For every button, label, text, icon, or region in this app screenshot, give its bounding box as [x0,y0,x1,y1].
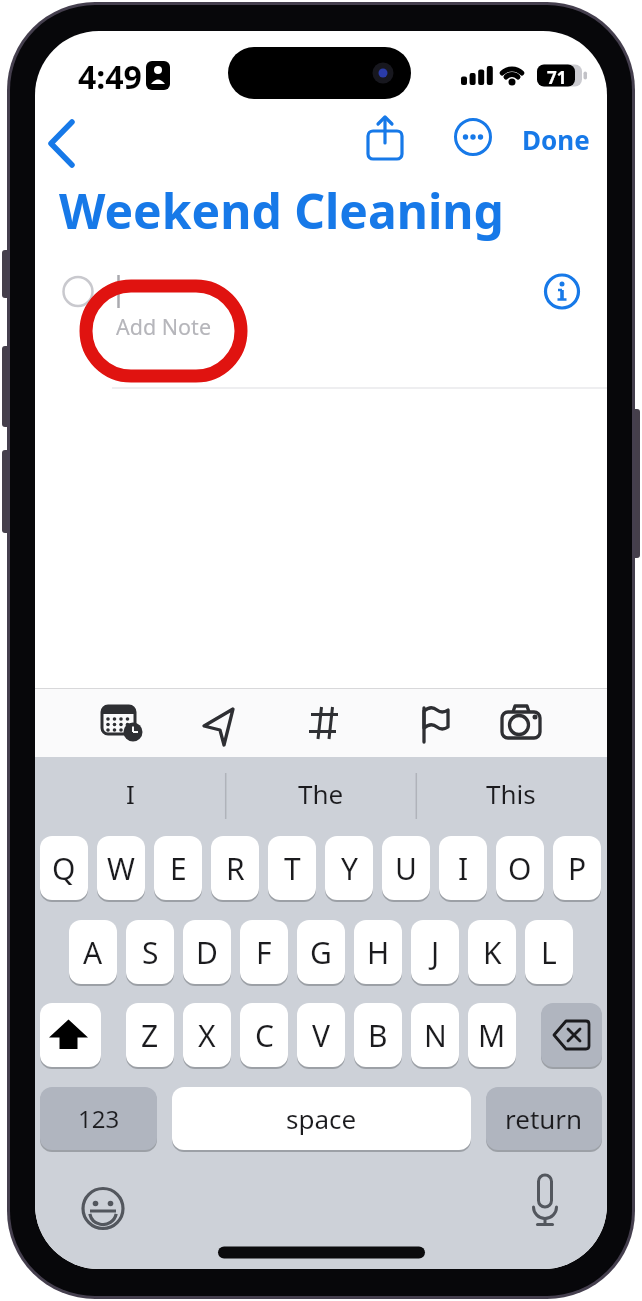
button[interactable] [453,117,493,157]
button[interactable] [541,1003,602,1067]
staticText: This [486,776,536,811]
button[interactable]: Q [40,836,88,900]
button[interactable]: W [97,836,145,900]
staticText: D [196,932,218,973]
button[interactable]: N [411,1003,459,1067]
button[interactable]: H [354,920,402,984]
staticText: C [255,1015,274,1056]
staticText: Weekend Cleaning [59,178,504,243]
button[interactable]: V [297,1003,345,1067]
button[interactable]: Z [126,1003,174,1067]
staticText: return [505,1101,583,1136]
staticText: Z [141,1015,159,1056]
staticText: K [483,932,502,973]
staticText: W [107,848,135,889]
staticText: X [198,1015,216,1056]
button[interactable]: B [354,1003,402,1067]
staticText: A [83,932,103,973]
staticText: O [508,848,532,889]
staticText: I [126,776,135,811]
button[interactable]: P [553,836,601,900]
button[interactable]: K [468,920,516,984]
button[interactable]: L [525,920,573,984]
staticText: space [286,1101,357,1136]
staticText: Y [341,848,358,889]
button[interactable]: This [416,762,606,824]
button[interactable] [407,699,455,747]
staticText: Add Note [116,312,212,341]
button[interactable]: D [183,920,231,984]
staticText: 4:49 [78,55,142,99]
button[interactable]: Done [522,122,590,157]
staticText: P [568,848,587,889]
button[interactable] [363,113,407,163]
button[interactable] [497,699,545,747]
button[interactable]: X [183,1003,231,1067]
staticText: T [284,848,301,889]
button[interactable] [95,699,143,747]
staticText: M [478,1015,506,1056]
button[interactable]: F [240,920,288,984]
button[interactable]: 123 [40,1087,157,1150]
button[interactable]: return [486,1087,602,1150]
button[interactable]: M [468,1003,516,1067]
staticText: H [367,932,390,973]
button[interactable] [310,703,340,743]
staticText: U [395,848,417,889]
staticText: J [431,932,440,973]
staticText: L [541,932,557,973]
button[interactable]: O [496,836,544,900]
staticText: 71 [547,66,567,85]
staticText: F [256,932,272,973]
staticText: R [226,848,245,889]
button[interactable]: space [172,1087,471,1150]
staticText: S [142,932,159,973]
button[interactable]: U [382,836,430,900]
button[interactable]: Y [325,836,373,900]
staticText: Q [52,848,76,889]
button[interactable]: C [240,1003,288,1067]
button[interactable] [521,1171,569,1219]
button[interactable]: I [439,836,487,900]
staticText: 123 [78,1102,120,1135]
button[interactable]: T [268,836,316,900]
button[interactable] [197,699,245,747]
staticText: V [312,1015,330,1056]
staticText: I [458,848,469,889]
button[interactable]: S [126,920,174,984]
button[interactable] [79,1184,127,1232]
button[interactable]: G [297,920,345,984]
button[interactable] [543,273,581,311]
button[interactable]: R [211,836,259,900]
button[interactable]: I [35,762,225,824]
button[interactable]: Add Note [116,312,212,341]
staticText: N [424,1015,447,1056]
staticText: G [310,932,332,973]
button[interactable] [43,116,83,171]
button[interactable]: E [154,836,202,900]
staticText: B [368,1015,388,1056]
staticText: The [298,776,344,811]
button[interactable]: The [226,762,416,824]
staticText: E [170,848,187,889]
button[interactable] [40,1003,101,1067]
button[interactable]: J [411,920,459,984]
staticText: Done [522,122,590,157]
button[interactable]: A [69,920,117,984]
